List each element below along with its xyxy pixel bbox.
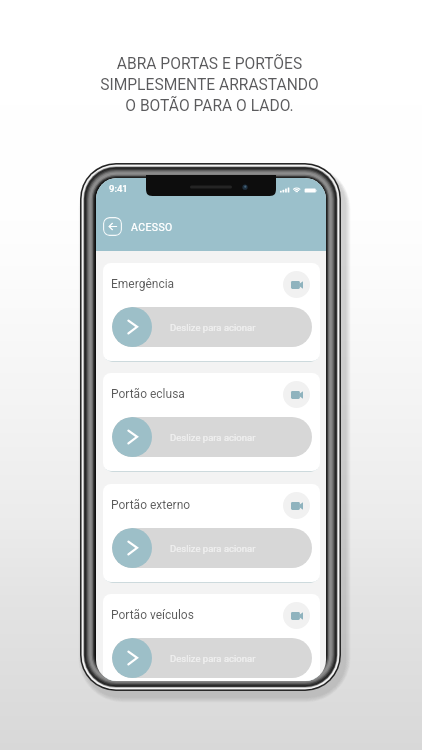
other: Deslize para acionar [112,417,152,457]
button[interactable]: Deslize para acionar [112,528,312,568]
button[interactable]: Emergência [103,263,320,361]
staticText: Portão veículos [111,608,194,622]
button[interactable]: Deslize para acionar [112,638,312,678]
staticText: Portão eclusa [111,387,185,401]
staticText: Emergência [111,277,175,291]
staticText: Deslize para acionar [170,322,256,333]
button[interactable]: Portão externo [103,484,320,582]
staticText: ABRA PORTAS E PORTÕES SIMPLESMENTE ARRAS… [100,55,319,115]
button[interactable]: Câmera [283,492,310,519]
button[interactable]: Deslize para acionar [112,307,312,347]
button[interactable]: Câmera [283,602,310,629]
staticText: Deslize para acionar [170,432,256,443]
staticText: ACESSO [131,221,173,233]
button[interactable]: Deslize para acionar [112,417,312,457]
staticText: 9:41 [109,183,128,194]
other: Deslize para acionar [112,528,152,568]
staticText: Portão externo [111,498,191,512]
other: Deslize para acionar [112,307,152,347]
staticText: Deslize para acionar [170,653,256,664]
button[interactable]: Câmera [283,381,310,408]
staticText: Deslize para acionar [170,543,256,554]
button[interactable]: Portão eclusa [103,373,320,471]
other: Deslize para acionar [112,638,152,678]
button[interactable]: Portão veículos [103,594,320,681]
button[interactable]: Voltar [103,217,122,236]
button[interactable]: Câmera [283,271,310,298]
